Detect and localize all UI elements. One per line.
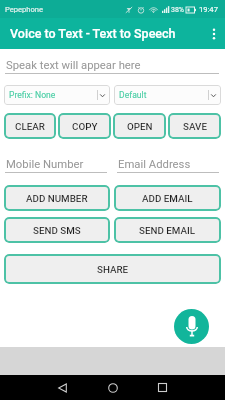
staticText: OPEN <box>127 121 153 132</box>
button[interactable]: OPEN <box>113 113 166 139</box>
staticText: Pepephone <box>5 5 44 14</box>
button[interactable]: SEND EMAIL <box>114 217 221 243</box>
staticText: COPY <box>72 121 98 132</box>
staticText: SAVE <box>183 121 207 132</box>
button[interactable]: COPY <box>58 113 111 139</box>
staticText: Mobile Number <box>6 158 84 171</box>
button[interactable]: Home <box>101 375 124 400</box>
staticText: SEND SMS <box>33 225 81 236</box>
staticText: Prefix: None <box>9 90 56 100</box>
staticText: ADD EMAIL <box>142 193 193 204</box>
button[interactable]: ADD EMAIL <box>114 185 221 211</box>
staticText: 38% <box>171 6 184 14</box>
button[interactable]: Start voice input <box>174 309 209 344</box>
staticText: CLEAR <box>15 121 45 132</box>
staticText: ADD NUMBER <box>26 193 88 204</box>
button[interactable]: Prefix: None <box>4 85 110 105</box>
button[interactable]: Default <box>114 85 221 105</box>
staticText: Speak text will appear here <box>6 59 141 72</box>
staticText: SEND EMAIL <box>139 225 196 236</box>
button[interactable]: SAVE <box>168 113 221 139</box>
staticText: Email Address <box>118 158 191 171</box>
staticText: SHARE <box>97 264 129 275</box>
button[interactable]: Recents <box>151 375 174 400</box>
staticText: Voice to Text - Text to Speech <box>10 26 176 41</box>
button[interactable]: More options <box>203 23 225 45</box>
staticText: 19:47 <box>199 5 218 14</box>
button[interactable]: Back <box>51 375 74 400</box>
button[interactable]: SHARE <box>4 254 221 284</box>
button[interactable]: CLEAR <box>4 113 56 139</box>
button[interactable]: ADD NUMBER <box>4 185 110 211</box>
button[interactable]: SEND SMS <box>4 217 110 243</box>
staticText: Default <box>119 90 147 100</box>
